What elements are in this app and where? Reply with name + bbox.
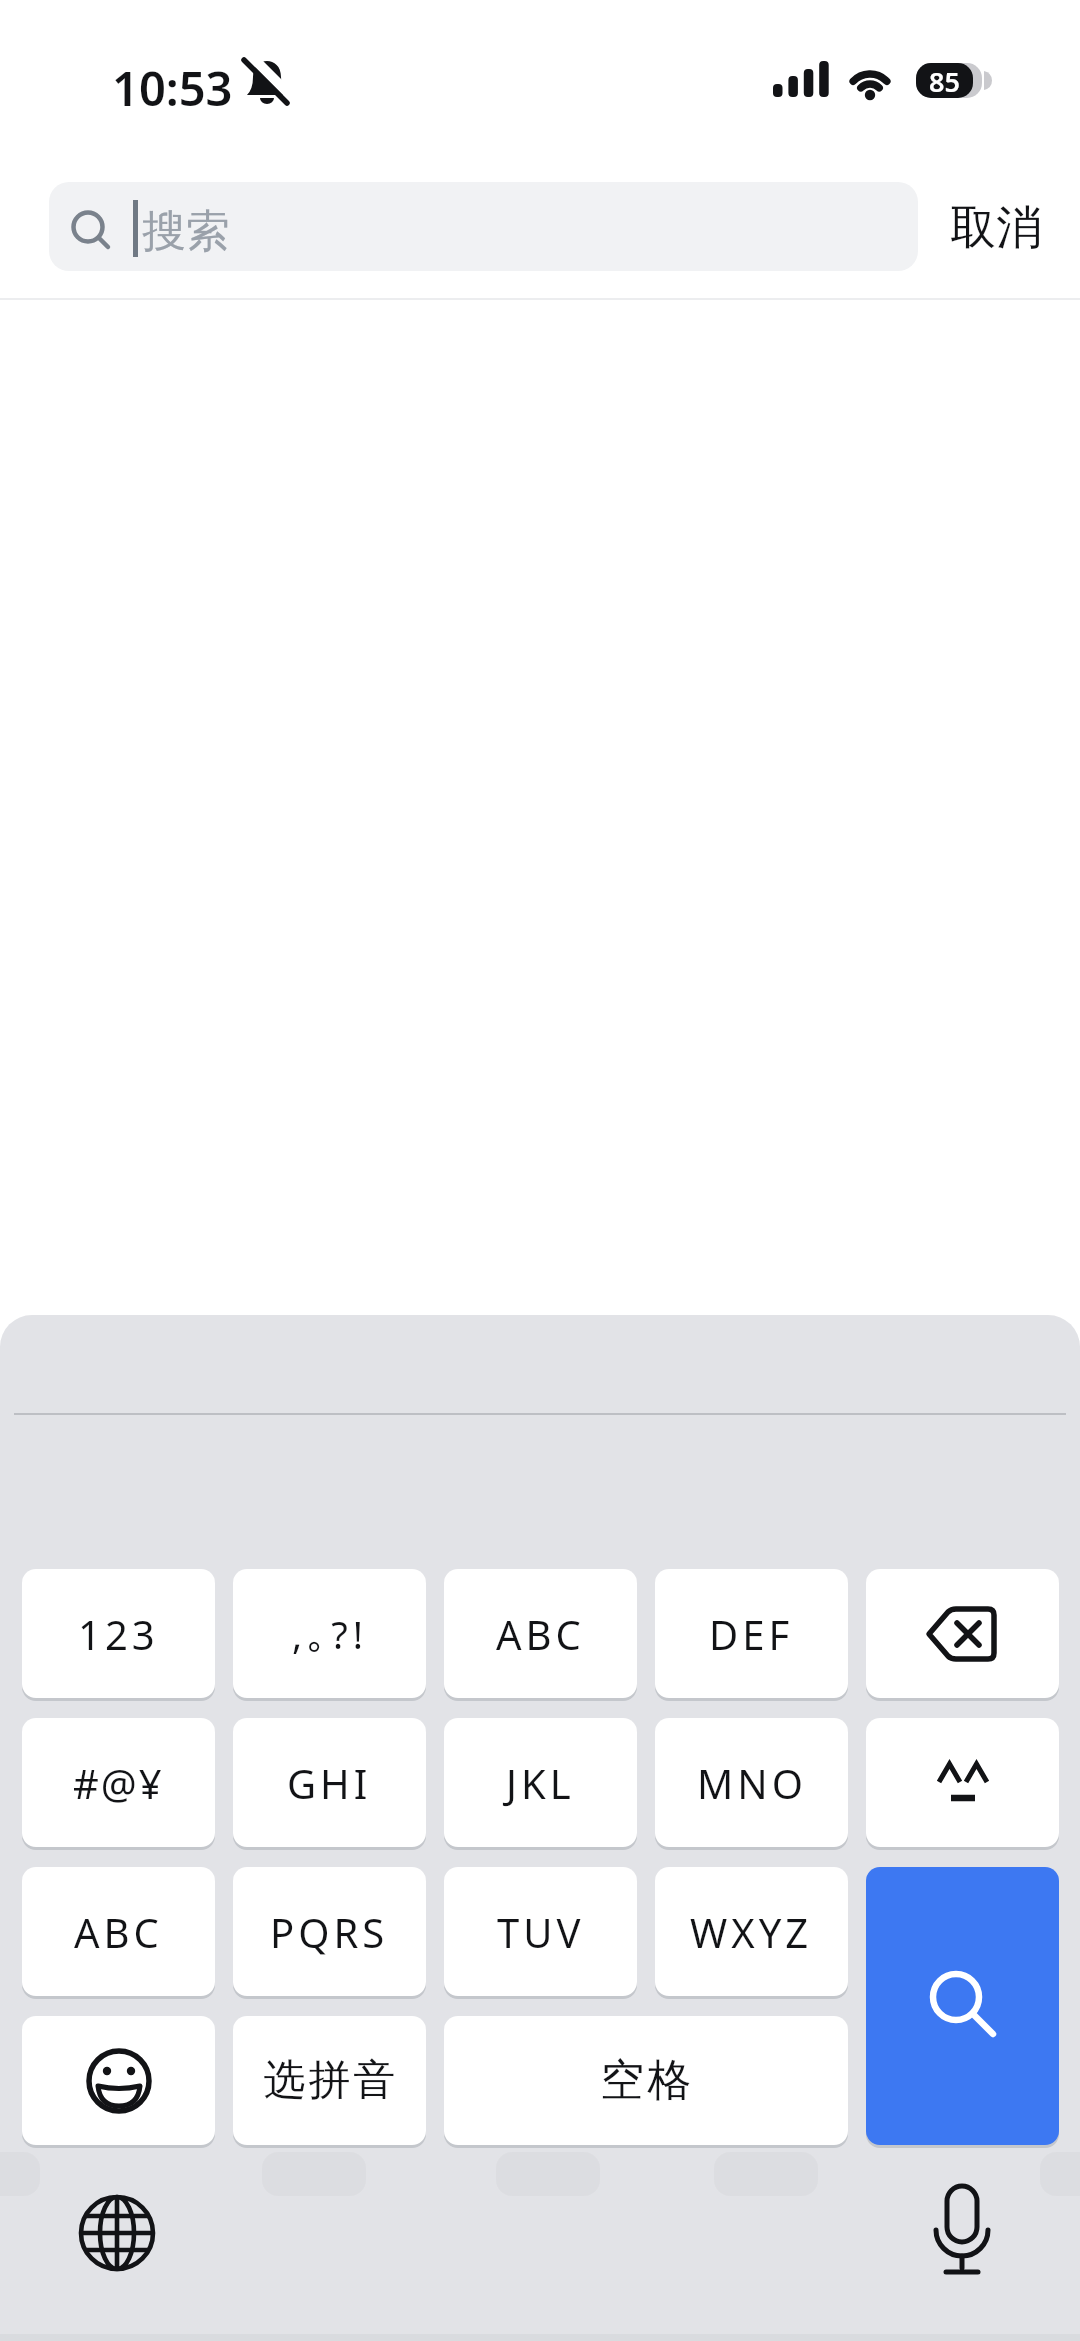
- button[interactable]: PQRS: [233, 1867, 426, 1996]
- staticText: 搜索: [142, 204, 230, 259]
- staticText: PQRS: [270, 1905, 389, 1959]
- button[interactable]: [75, 2191, 159, 2275]
- button[interactable]: ,｡?!: [233, 1569, 426, 1698]
- button[interactable]: [866, 1718, 1059, 1847]
- staticText: 85: [929, 63, 960, 98]
- staticText: 空格: [599, 2053, 693, 2108]
- staticText: GHI: [287, 1756, 372, 1810]
- button[interactable]: DEF: [655, 1569, 848, 1698]
- staticText: ABC: [496, 1607, 585, 1661]
- staticText: #@¥: [73, 1756, 164, 1810]
- button[interactable]: GHI: [233, 1718, 426, 1847]
- staticText: WXYZ: [690, 1905, 813, 1959]
- staticText: 取消: [950, 199, 1042, 257]
- staticText: 123: [78, 1607, 159, 1661]
- button[interactable]: [920, 2180, 1004, 2280]
- button[interactable]: TUV: [444, 1867, 637, 1996]
- button[interactable]: [866, 1867, 1059, 2145]
- button[interactable]: 空格: [444, 2016, 848, 2145]
- button[interactable]: 取消: [950, 195, 1050, 261]
- staticText: ,｡?!: [292, 1608, 368, 1660]
- button[interactable]: ABC: [444, 1569, 637, 1698]
- button[interactable]: MNO: [655, 1718, 848, 1847]
- staticText: JKL: [506, 1756, 575, 1810]
- staticText: DEF: [709, 1607, 794, 1661]
- staticText: 选拼音: [262, 2054, 397, 2107]
- staticText: TUV: [497, 1905, 585, 1959]
- button[interactable]: #@¥: [22, 1718, 215, 1847]
- button[interactable]: 选拼音: [233, 2016, 426, 2145]
- button[interactable]: 123: [22, 1569, 215, 1698]
- button[interactable]: WXYZ: [655, 1867, 848, 1996]
- staticText: 10:53: [112, 56, 233, 120]
- button[interactable]: ABC: [22, 1867, 215, 1996]
- button[interactable]: [49, 182, 918, 271]
- staticText: ABC: [74, 1905, 163, 1959]
- button[interactable]: [22, 2016, 215, 2145]
- staticText: MNO: [697, 1756, 807, 1810]
- button[interactable]: JKL: [444, 1718, 637, 1847]
- button[interactable]: [866, 1569, 1059, 1698]
